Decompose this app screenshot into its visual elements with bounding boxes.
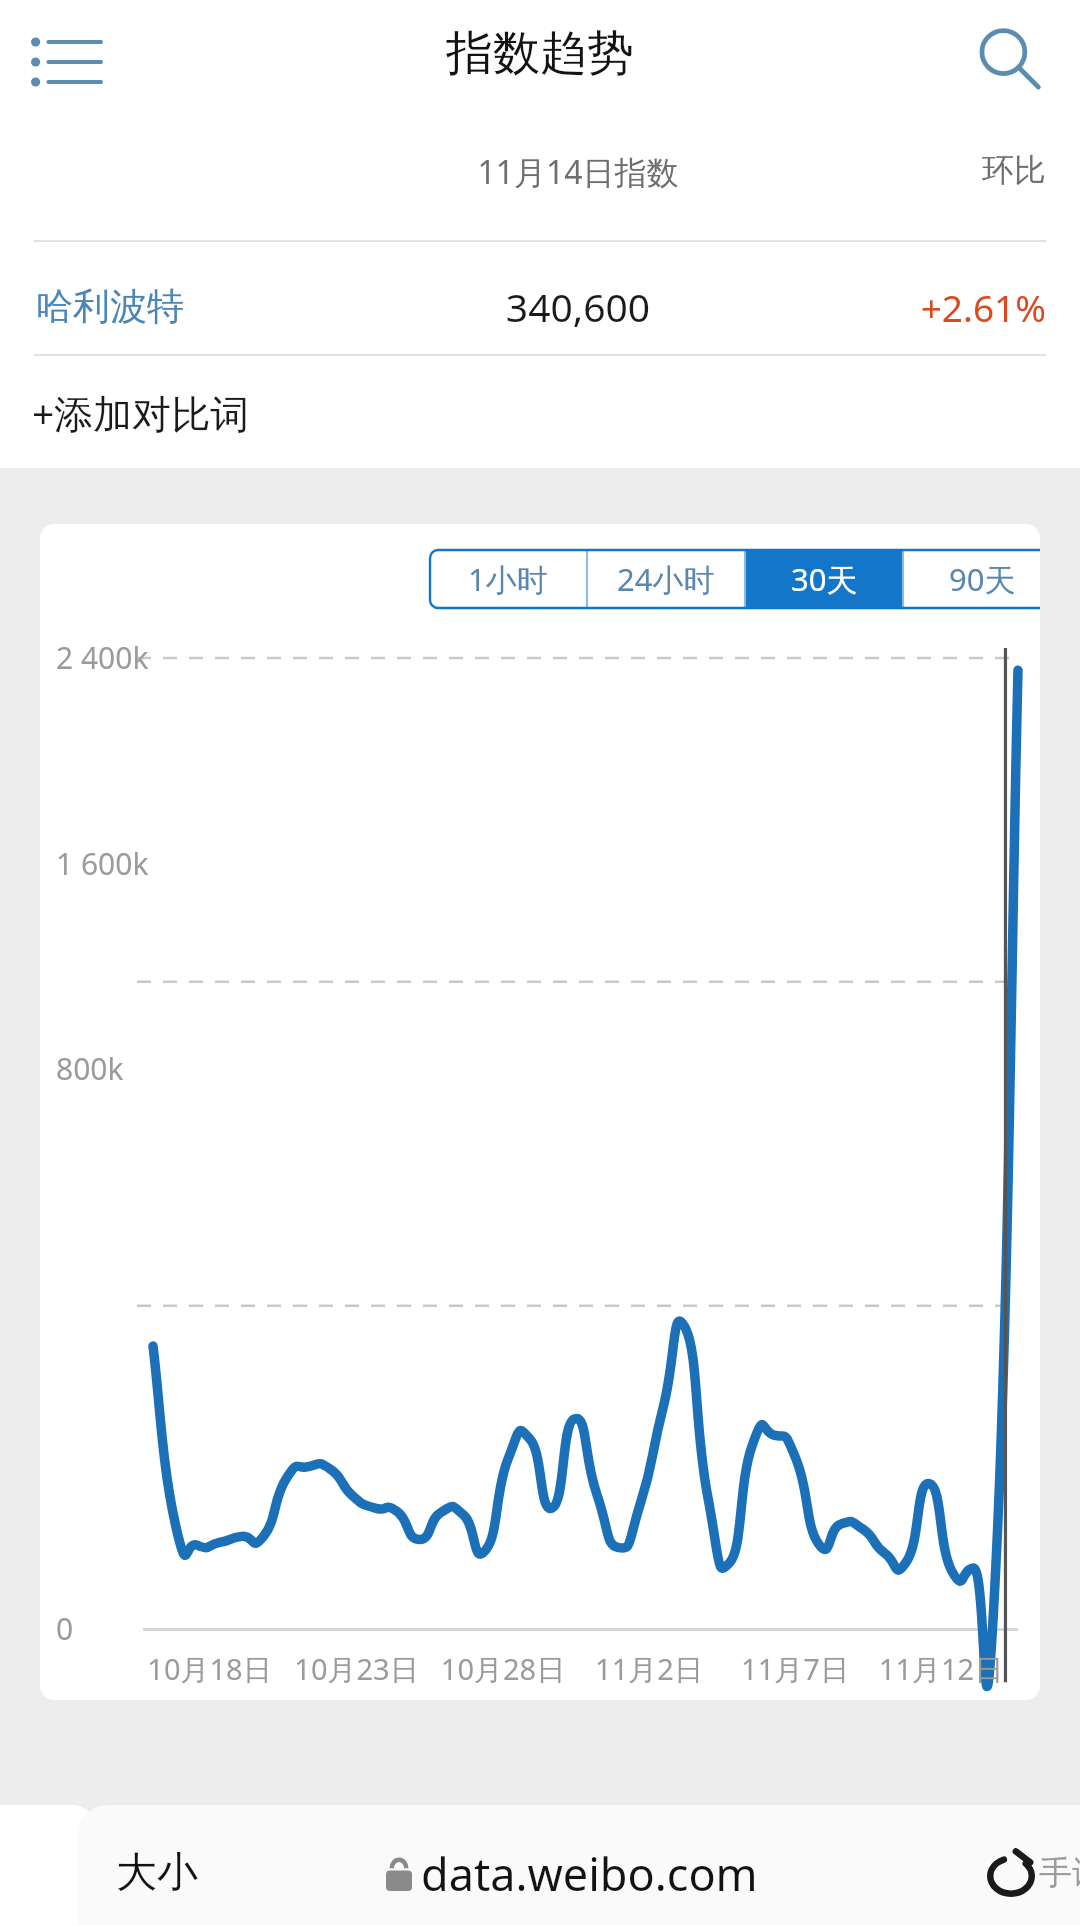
button[interactable]: Search (958, 8, 1062, 112)
staticText: 0 (56, 1608, 74, 1649)
staticText: 11月7日 (722, 1649, 868, 1689)
staticText: 24小时 (617, 558, 715, 600)
staticText: 10月23日 (283, 1649, 430, 1689)
button[interactable]: +添加对比词 (26, 376, 256, 449)
staticText: 2 400k (56, 637, 149, 678)
staticText: 10月18日 (136, 1649, 283, 1689)
button[interactable]: 24小时 (588, 550, 744, 608)
staticText: 哈利波特 (36, 283, 347, 330)
staticText: 800k (56, 1048, 124, 1089)
staticText: 环比 (809, 150, 1046, 190)
button[interactable]: Menu (14, 10, 118, 114)
staticText: 11月2日 (576, 1649, 722, 1689)
staticText: 90天 (949, 558, 1016, 600)
staticText: 指数趋势 (446, 24, 634, 83)
staticText: 11月12日 (868, 1649, 1014, 1689)
staticText: 1 600k (56, 843, 149, 884)
staticText: 11月14日指数 (347, 150, 809, 194)
button[interactable]: 90天 (904, 550, 1040, 608)
staticText: 10月28日 (430, 1649, 576, 1689)
button[interactable]: 大小 (78, 1805, 1080, 1925)
staticText: 30天 (791, 558, 858, 600)
button[interactable]: 30天 (746, 550, 902, 608)
button[interactable]: 1小时 (430, 550, 586, 608)
staticText: 手谈姬 (1039, 1852, 1080, 1894)
staticText: data.weibo.com (421, 1843, 758, 1904)
staticText: 1小时 (468, 558, 548, 600)
button[interactable]: 哈利波特 (0, 258, 1080, 354)
staticText: 大小 (116, 1847, 198, 1899)
staticText: +添加对比词 (32, 386, 250, 439)
staticText: 340,600 (347, 280, 809, 333)
staticText: +2.61% (809, 282, 1046, 332)
